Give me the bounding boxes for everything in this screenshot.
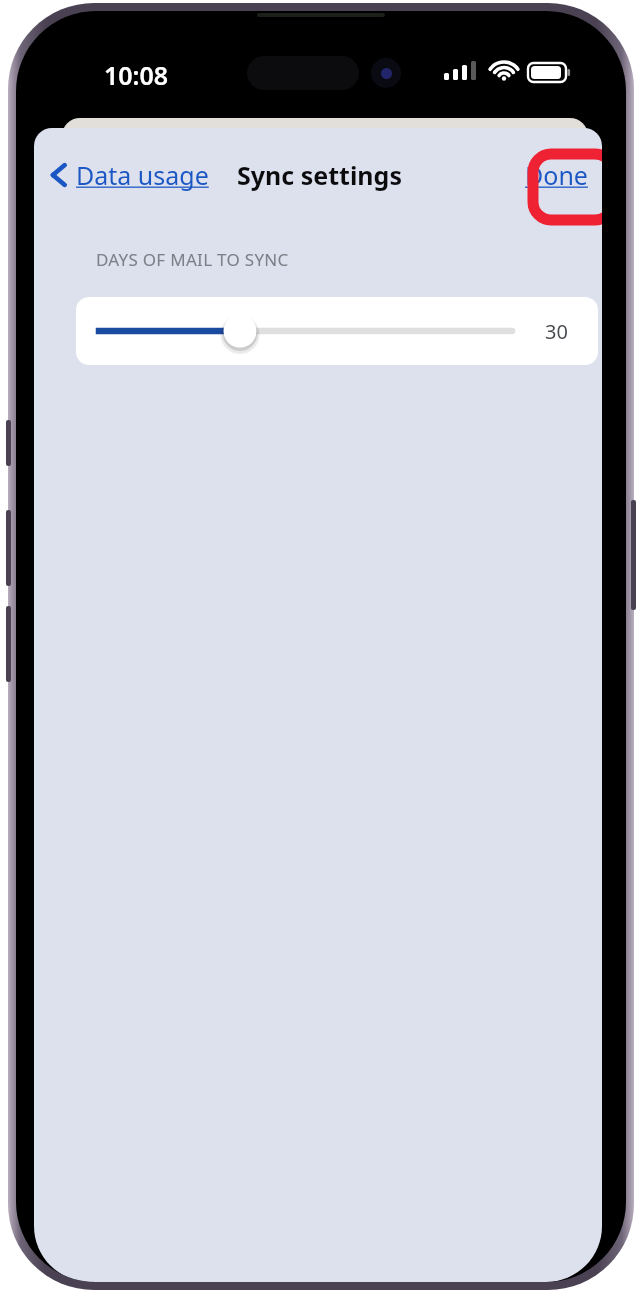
other: Done highlight <box>528 149 602 225</box>
staticText: Done <box>525 158 588 192</box>
button[interactable]: Done <box>517 148 596 202</box>
staticText: 30 <box>545 318 568 345</box>
staticText: DAYS OF MAIL TO SYNC <box>96 248 289 271</box>
button[interactable]: Data usage <box>44 148 215 202</box>
button[interactable]: 30 <box>76 297 598 365</box>
staticText: 10:08 <box>104 58 169 92</box>
staticText: Data usage <box>76 158 209 192</box>
staticText: Sync settings <box>237 158 402 192</box>
